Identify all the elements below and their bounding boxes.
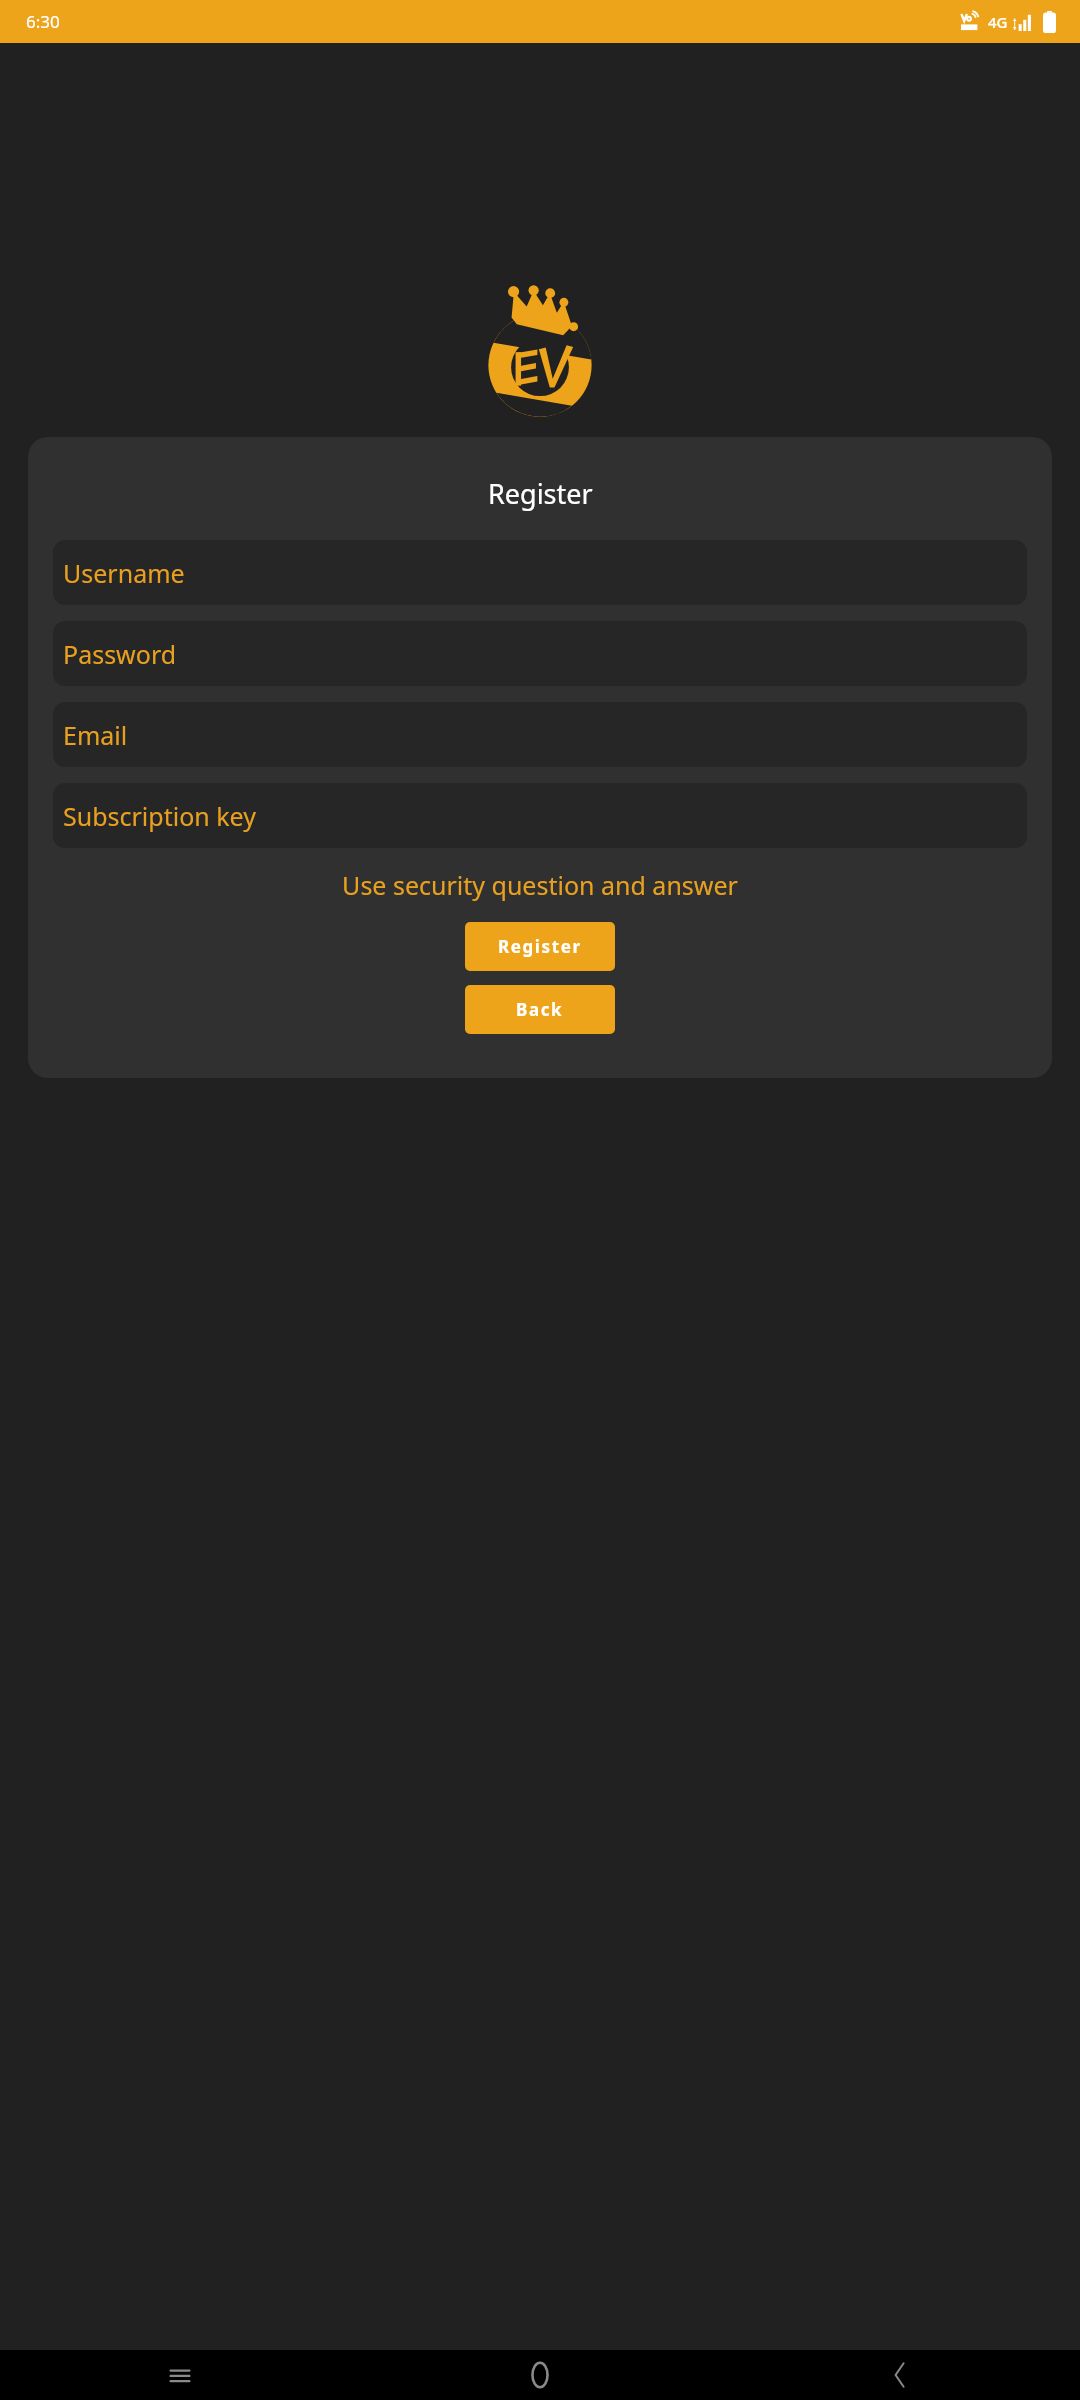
staticText: Username [63,556,185,590]
button[interactable]: Recent apps [0,2350,360,2400]
button[interactable]: Password [53,621,1027,686]
staticText: Password [63,637,177,671]
button[interactable]: Back [720,2350,1080,2400]
staticText: 4G [988,12,1008,32]
staticText: Back [516,998,564,1021]
button[interactable]: Username [53,540,1027,605]
staticText: Subscription key [63,799,256,833]
button[interactable]: Home [360,2350,720,2400]
staticText: Register [498,935,582,958]
staticText: Email [63,718,128,752]
button[interactable]: Register [465,922,615,971]
button[interactable]: Subscription key [53,783,1027,848]
button[interactable]: Use security question and answer [62,868,1018,902]
button[interactable]: Back [465,985,615,1034]
button[interactable]: Email [53,702,1027,767]
staticText: Register [488,475,593,512]
staticText: 6:30 [26,10,60,33]
